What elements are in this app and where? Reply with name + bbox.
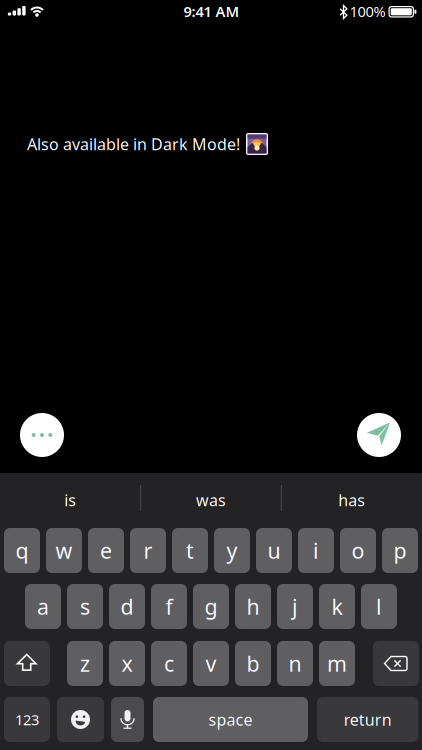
staticText: i bbox=[313, 536, 319, 565]
button[interactable]: z bbox=[67, 641, 103, 686]
staticText: b bbox=[246, 649, 259, 678]
button[interactable]: d bbox=[109, 584, 145, 629]
staticText: t bbox=[186, 536, 194, 565]
button[interactable]: r bbox=[130, 528, 166, 573]
button[interactable]: y bbox=[214, 528, 250, 573]
button[interactable]: x bbox=[109, 641, 145, 686]
button[interactable]: a bbox=[25, 584, 61, 629]
staticText: s bbox=[80, 592, 90, 621]
staticText: h bbox=[246, 592, 259, 621]
staticText: w bbox=[55, 536, 72, 565]
button[interactable]: space bbox=[153, 697, 308, 742]
staticText: a bbox=[37, 592, 49, 621]
button[interactable]: j bbox=[277, 584, 313, 629]
staticText: e bbox=[100, 536, 112, 565]
button[interactable]: return bbox=[317, 697, 418, 742]
button[interactable]: l bbox=[361, 584, 397, 629]
staticText: n bbox=[288, 649, 301, 678]
button[interactable]: g bbox=[193, 584, 229, 629]
staticText: l bbox=[376, 592, 382, 621]
button[interactable]: p bbox=[382, 528, 418, 573]
button[interactable]: w bbox=[46, 528, 82, 573]
staticText: d bbox=[120, 592, 133, 621]
staticText: c bbox=[164, 649, 174, 678]
button[interactable]: has bbox=[288, 477, 416, 523]
button[interactable]: Emoji bbox=[57, 697, 104, 742]
staticText: x bbox=[121, 649, 132, 678]
button[interactable]: o bbox=[340, 528, 376, 573]
staticText: return bbox=[344, 709, 392, 730]
button[interactable]: Delete bbox=[373, 641, 419, 686]
button[interactable]: h bbox=[235, 584, 271, 629]
button[interactable]: q bbox=[4, 528, 40, 573]
staticText: g bbox=[204, 592, 217, 621]
staticText: is bbox=[64, 489, 76, 511]
button[interactable]: n bbox=[277, 641, 313, 686]
staticText: p bbox=[393, 536, 406, 565]
staticText: z bbox=[80, 649, 90, 678]
button[interactable]: m bbox=[319, 641, 355, 686]
button[interactable]: 123 bbox=[4, 697, 50, 742]
button[interactable]: v bbox=[193, 641, 229, 686]
button[interactable]: f bbox=[151, 584, 187, 629]
staticText: y bbox=[226, 536, 237, 565]
staticText: r bbox=[143, 536, 152, 565]
staticText: k bbox=[331, 592, 342, 621]
staticText: 123 bbox=[15, 710, 39, 729]
staticText: Also available in Dark Mode! bbox=[27, 133, 240, 155]
staticText: 100% bbox=[349, 2, 385, 21]
button[interactable]: was bbox=[147, 477, 275, 523]
staticText: o bbox=[351, 536, 364, 565]
staticText: q bbox=[15, 536, 28, 565]
staticText: has bbox=[338, 489, 365, 511]
button[interactable]: e bbox=[88, 528, 124, 573]
button[interactable]: b bbox=[235, 641, 271, 686]
staticText: m bbox=[327, 649, 347, 678]
button[interactable]: k bbox=[319, 584, 355, 629]
button[interactable]: c bbox=[151, 641, 187, 686]
button[interactable]: i bbox=[298, 528, 334, 573]
staticText: was bbox=[196, 489, 226, 511]
button[interactable]: s bbox=[67, 584, 103, 629]
staticText: v bbox=[205, 649, 216, 678]
staticText: f bbox=[165, 592, 172, 621]
button[interactable]: Dictate bbox=[111, 697, 144, 742]
button[interactable]: is bbox=[6, 477, 134, 523]
button[interactable]: t bbox=[172, 528, 208, 573]
button[interactable]: Shift bbox=[4, 641, 50, 686]
button[interactable]: Send bbox=[357, 413, 401, 457]
button[interactable]: More options bbox=[20, 413, 64, 457]
staticText: space bbox=[208, 709, 252, 730]
button[interactable]: u bbox=[256, 528, 292, 573]
staticText: 9:41 AM bbox=[183, 2, 239, 21]
staticText: j bbox=[292, 592, 298, 621]
staticText: u bbox=[267, 536, 280, 565]
